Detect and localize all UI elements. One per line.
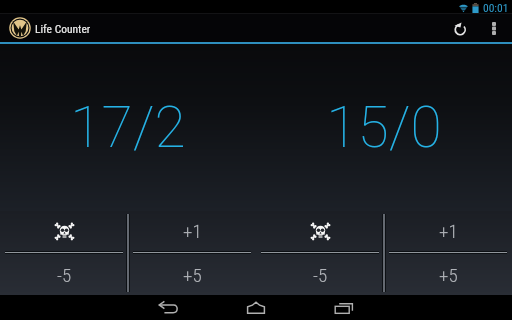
button[interactable]: -5 [256, 254, 384, 295]
staticText: Life Counter [35, 22, 91, 35]
button[interactable]: -5 [0, 254, 128, 295]
button[interactable]: +5 [128, 254, 256, 295]
button[interactable]: Reset [443, 14, 477, 42]
staticText: +1 [183, 220, 202, 242]
button[interactable]: +5 [384, 254, 512, 295]
button[interactable]: Home [212, 295, 300, 320]
staticText: +5 [183, 264, 202, 286]
button[interactable]: Poison counter [0, 211, 128, 251]
button[interactable]: 15/0 [256, 44, 512, 211]
staticText: 15/0 [326, 94, 442, 161]
other: Poison counter [310, 221, 331, 242]
button[interactable]: More options [477, 14, 511, 42]
staticText: +5 [439, 264, 458, 286]
button[interactable]: Recents [300, 295, 388, 320]
button[interactable]: +1 [384, 211, 512, 251]
staticText: -5 [57, 264, 72, 286]
staticText: 00:01 [483, 1, 509, 14]
staticText: +1 [439, 220, 458, 242]
staticText: 17/2 [70, 94, 186, 161]
button[interactable]: Poison counter [256, 211, 384, 251]
button[interactable]: +1 [128, 211, 256, 251]
other: Poison counter [54, 221, 75, 242]
button[interactable]: 17/2 [0, 44, 256, 211]
button[interactable]: Back [124, 295, 212, 320]
staticText: -5 [313, 264, 328, 286]
